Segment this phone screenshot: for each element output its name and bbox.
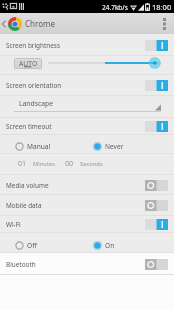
- staticText: Screen orientation: [6, 81, 62, 90]
- staticText: AUTO: [19, 59, 38, 68]
- staticText: Screen timeout: [6, 122, 52, 131]
- staticText: 00: [65, 159, 74, 169]
- button[interactable]: Switch on: [145, 40, 168, 51]
- staticText: On: [105, 241, 115, 250]
- staticText: Manual: [27, 142, 51, 151]
- staticText: Mobile data: [6, 201, 42, 210]
- button[interactable]: Off: [15, 241, 37, 250]
- button[interactable]: Switch on: [145, 80, 168, 91]
- staticText: Wi-Fi: [6, 220, 21, 229]
- button[interactable]: Screen brightness: [0, 34, 174, 56]
- button[interactable]: Mobile data: [0, 195, 174, 216]
- button[interactable]: 01: [18, 159, 27, 169]
- button[interactable]: Switch off: [145, 180, 168, 191]
- button[interactable]: Switch on: [145, 219, 168, 230]
- button[interactable]: Bluetooth: [0, 253, 174, 275]
- button[interactable]: Switch on: [145, 121, 168, 132]
- button[interactable]: Never: [93, 142, 124, 151]
- staticText: 24.7kb/s: [102, 3, 128, 12]
- staticText: Minutes: [33, 160, 56, 168]
- staticText: Never: [105, 142, 124, 151]
- staticText: Screen brightness: [6, 41, 60, 50]
- button[interactable]: Landscape: [14, 97, 161, 112]
- button[interactable]: More options: [154, 13, 174, 34]
- button[interactable]: Manual: [15, 142, 51, 151]
- button[interactable]: Media volume: [0, 175, 174, 195]
- staticText: Seconds: [80, 160, 103, 168]
- button[interactable]: Screen orientation: [0, 75, 174, 96]
- button[interactable]: Wi-Fi: [0, 216, 174, 233]
- staticText: Off: [27, 241, 37, 250]
- button[interactable]: AUTO: [14, 58, 42, 69]
- staticText: Media volume: [6, 181, 49, 190]
- staticText: Bluetooth: [6, 260, 36, 269]
- staticText: 01: [18, 159, 27, 169]
- button[interactable]: 00: [65, 159, 74, 169]
- button[interactable]: On: [93, 241, 115, 250]
- staticText: 18:00: [152, 2, 172, 12]
- staticText: Chrome: [25, 18, 55, 29]
- button[interactable]: Switch off: [145, 259, 168, 270]
- button[interactable]: Switch off: [145, 200, 168, 211]
- button[interactable]: Screen timeout: [0, 118, 174, 135]
- staticText: Landscape: [19, 99, 54, 108]
- button[interactable]: Back: [0, 13, 8, 34]
